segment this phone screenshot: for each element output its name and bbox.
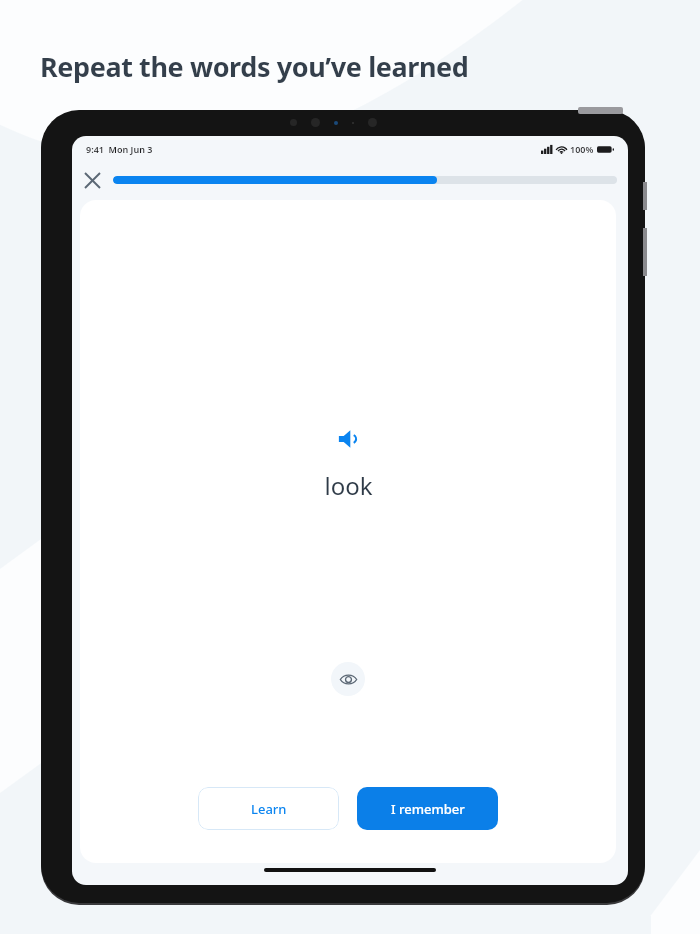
button[interactable]: Show translation <box>331 662 365 696</box>
staticText: look <box>324 469 373 502</box>
staticText: 100% <box>570 143 594 155</box>
staticText: Repeat the words you’ve learned <box>40 48 469 85</box>
staticText: Learn <box>251 800 287 818</box>
staticText: 9:41 Mon Jun 3 <box>86 143 153 155</box>
staticText: I remember <box>391 800 465 818</box>
button[interactable]: I remember <box>357 787 498 830</box>
button[interactable]: Learn <box>198 787 339 830</box>
button[interactable]: Close <box>78 166 106 194</box>
button[interactable]: Play pronunciation <box>328 418 370 460</box>
